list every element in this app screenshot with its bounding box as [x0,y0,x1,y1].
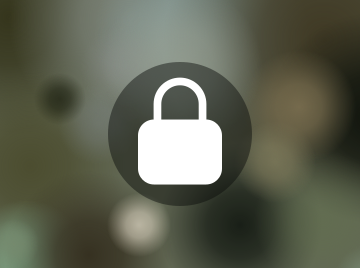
button[interactable]: Hidden — tap to unlock [108,62,252,206]
